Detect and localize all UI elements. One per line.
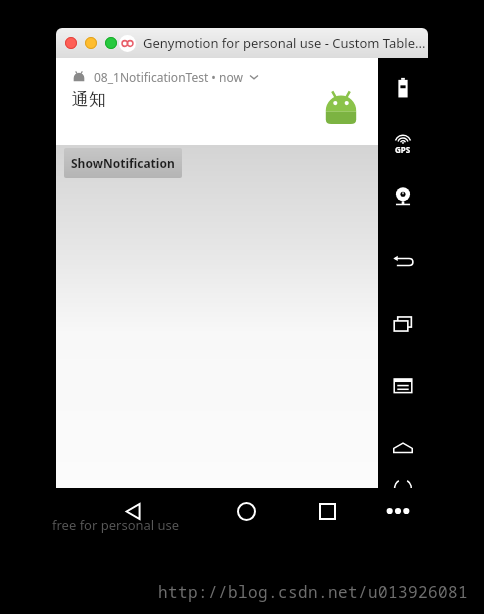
staticText: 通知 [72,89,106,110]
staticText: Genymotion for personal use - Custom Tab… [143,34,426,52]
button[interactable]: Copy [386,307,420,341]
button[interactable]: ShowNotification [64,148,182,178]
button[interactable]: Back [386,245,420,279]
button[interactable]: Camera [386,179,420,213]
button[interactable]: Keyboard [386,369,420,403]
staticText: free for personal use [52,516,180,534]
staticText: 08_1NotificationTest • now [94,69,243,85]
button[interactable]: Recents [306,490,348,532]
button[interactable]: Battery [386,71,420,105]
staticText: ShowNotification [71,155,175,171]
button[interactable]: Volume [386,431,420,465]
button[interactable]: GPS [387,125,419,157]
staticText: http://blog.csdn.net/u013926081 [158,581,469,603]
staticText: GPS [395,144,411,155]
button[interactable]: Home [225,490,267,532]
button[interactable]: 08_1NotificationTest • now [56,58,378,145]
button[interactable]: Back [112,490,154,532]
button[interactable]: More options [377,490,419,532]
